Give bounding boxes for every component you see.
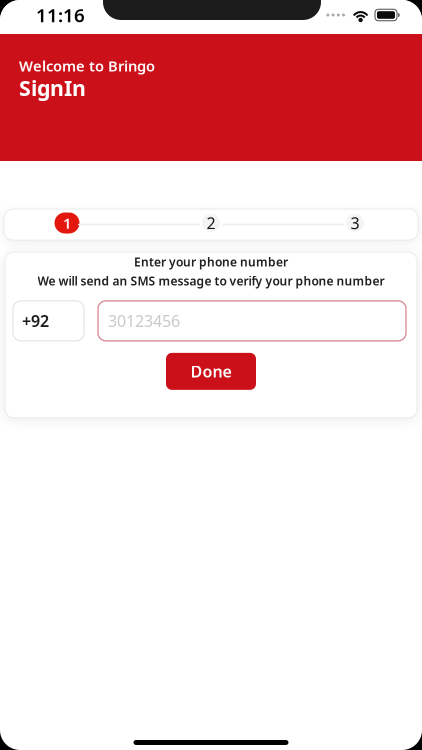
staticText: Enter your phone number	[134, 254, 288, 270]
staticText: 2	[206, 212, 215, 234]
staticText: +92	[22, 310, 49, 331]
staticText: 11:16	[36, 3, 85, 27]
staticText: 3	[350, 212, 359, 234]
staticText: Done	[190, 361, 231, 382]
staticText: We will send an SMS message to verify yo…	[37, 273, 384, 289]
button[interactable]: Step 1, current	[56, 212, 78, 237]
staticText: Welcome to Bringo	[19, 56, 155, 75]
button[interactable]: Step 3	[344, 212, 366, 237]
button[interactable]: Step 2	[200, 212, 222, 237]
button[interactable]: 30123456	[98, 301, 406, 341]
button[interactable]: Done	[166, 353, 256, 390]
button[interactable]: +92	[13, 301, 84, 341]
staticText: SignIn	[19, 73, 86, 102]
staticText: 30123456	[108, 310, 180, 331]
staticText: 1	[63, 213, 71, 233]
